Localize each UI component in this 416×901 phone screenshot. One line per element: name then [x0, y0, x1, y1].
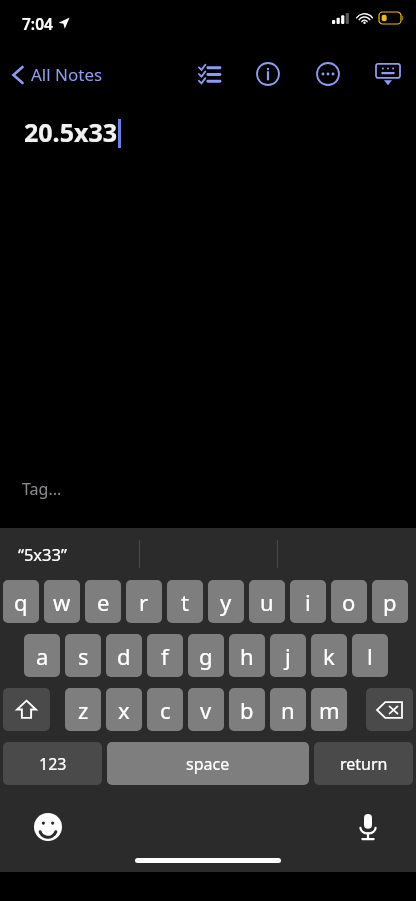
staticText: i [305, 587, 311, 617]
button[interactable]: Backspace [366, 688, 413, 731]
button[interactable]: d [106, 634, 142, 677]
staticText: e [97, 587, 110, 617]
staticText: g [199, 641, 213, 671]
staticText: o [342, 587, 356, 617]
button[interactable]: g [188, 634, 224, 677]
button[interactable]: Info [248, 54, 288, 94]
staticText: space [186, 753, 230, 775]
button[interactable]: b [229, 688, 265, 731]
staticText: c [160, 695, 171, 725]
button[interactable]: r [126, 580, 162, 623]
staticText: x [118, 695, 130, 725]
button[interactable]: Hide keyboard [368, 54, 408, 94]
staticText: n [281, 695, 295, 725]
staticText: q [14, 587, 28, 617]
staticText: r [139, 587, 149, 617]
button[interactable]: n [270, 688, 306, 731]
button[interactable]: q [3, 580, 39, 623]
button[interactable]: “5x33” [0, 543, 139, 565]
staticText: 20.5x33 [24, 115, 117, 149]
staticText: p [383, 587, 397, 617]
button[interactable]: f [147, 634, 183, 677]
button[interactable]: z [65, 688, 101, 731]
staticText: f [161, 641, 169, 671]
button[interactable]: u [249, 580, 285, 623]
staticText: l [367, 641, 373, 671]
button[interactable]: Emoji [30, 809, 66, 845]
button[interactable]: More options [308, 54, 348, 94]
staticText: s [78, 641, 89, 671]
button[interactable]: j [270, 634, 306, 677]
button[interactable]: Dictation [350, 809, 386, 845]
button[interactable]: All Notes [8, 57, 107, 92]
button[interactable]: c [147, 688, 183, 731]
button[interactable]: t [167, 580, 203, 623]
button[interactable]: a [24, 634, 60, 677]
staticText: return [340, 753, 388, 775]
button[interactable]: k [311, 634, 347, 677]
button[interactable]: Shift [3, 688, 50, 731]
button[interactable]: y [208, 580, 244, 623]
staticText: m [319, 695, 340, 725]
staticText: 7:04 [22, 13, 53, 34]
button[interactable]: 123 [3, 742, 102, 785]
button[interactable]: return [314, 742, 413, 785]
button[interactable]: h [229, 634, 265, 677]
button[interactable]: o [331, 580, 367, 623]
staticText: 123 [39, 753, 67, 775]
button[interactable]: s [65, 634, 101, 677]
button[interactable]: x [106, 688, 142, 731]
button[interactable]: i [290, 580, 326, 623]
staticText: All Notes [31, 63, 103, 86]
staticText: j [285, 641, 291, 671]
staticText: t [181, 587, 189, 617]
staticText: Tag... [22, 478, 62, 500]
button[interactable]: w [44, 580, 80, 623]
staticText: d [117, 641, 131, 671]
staticText: u [260, 587, 274, 617]
staticText: a [36, 641, 49, 671]
staticText: h [240, 641, 254, 671]
staticText: v [200, 695, 212, 725]
staticText: k [323, 641, 335, 671]
staticText: w [53, 587, 71, 617]
button[interactable]: e [85, 580, 121, 623]
button[interactable]: p [372, 580, 408, 623]
button[interactable]: v [188, 688, 224, 731]
button[interactable]: space [107, 742, 309, 785]
staticText: z [78, 695, 89, 725]
button[interactable]: l [352, 634, 388, 677]
staticText: y [220, 587, 232, 617]
staticText: b [240, 695, 254, 725]
button[interactable]: m [311, 688, 347, 731]
button[interactable]: Checklist [190, 55, 228, 93]
